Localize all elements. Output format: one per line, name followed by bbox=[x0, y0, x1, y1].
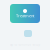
button[interactable]: Treatment bbox=[10, 4, 40, 23]
button[interactable]: Open bbox=[24, 30, 32, 37]
staticText: Treatment bbox=[16, 13, 34, 18]
